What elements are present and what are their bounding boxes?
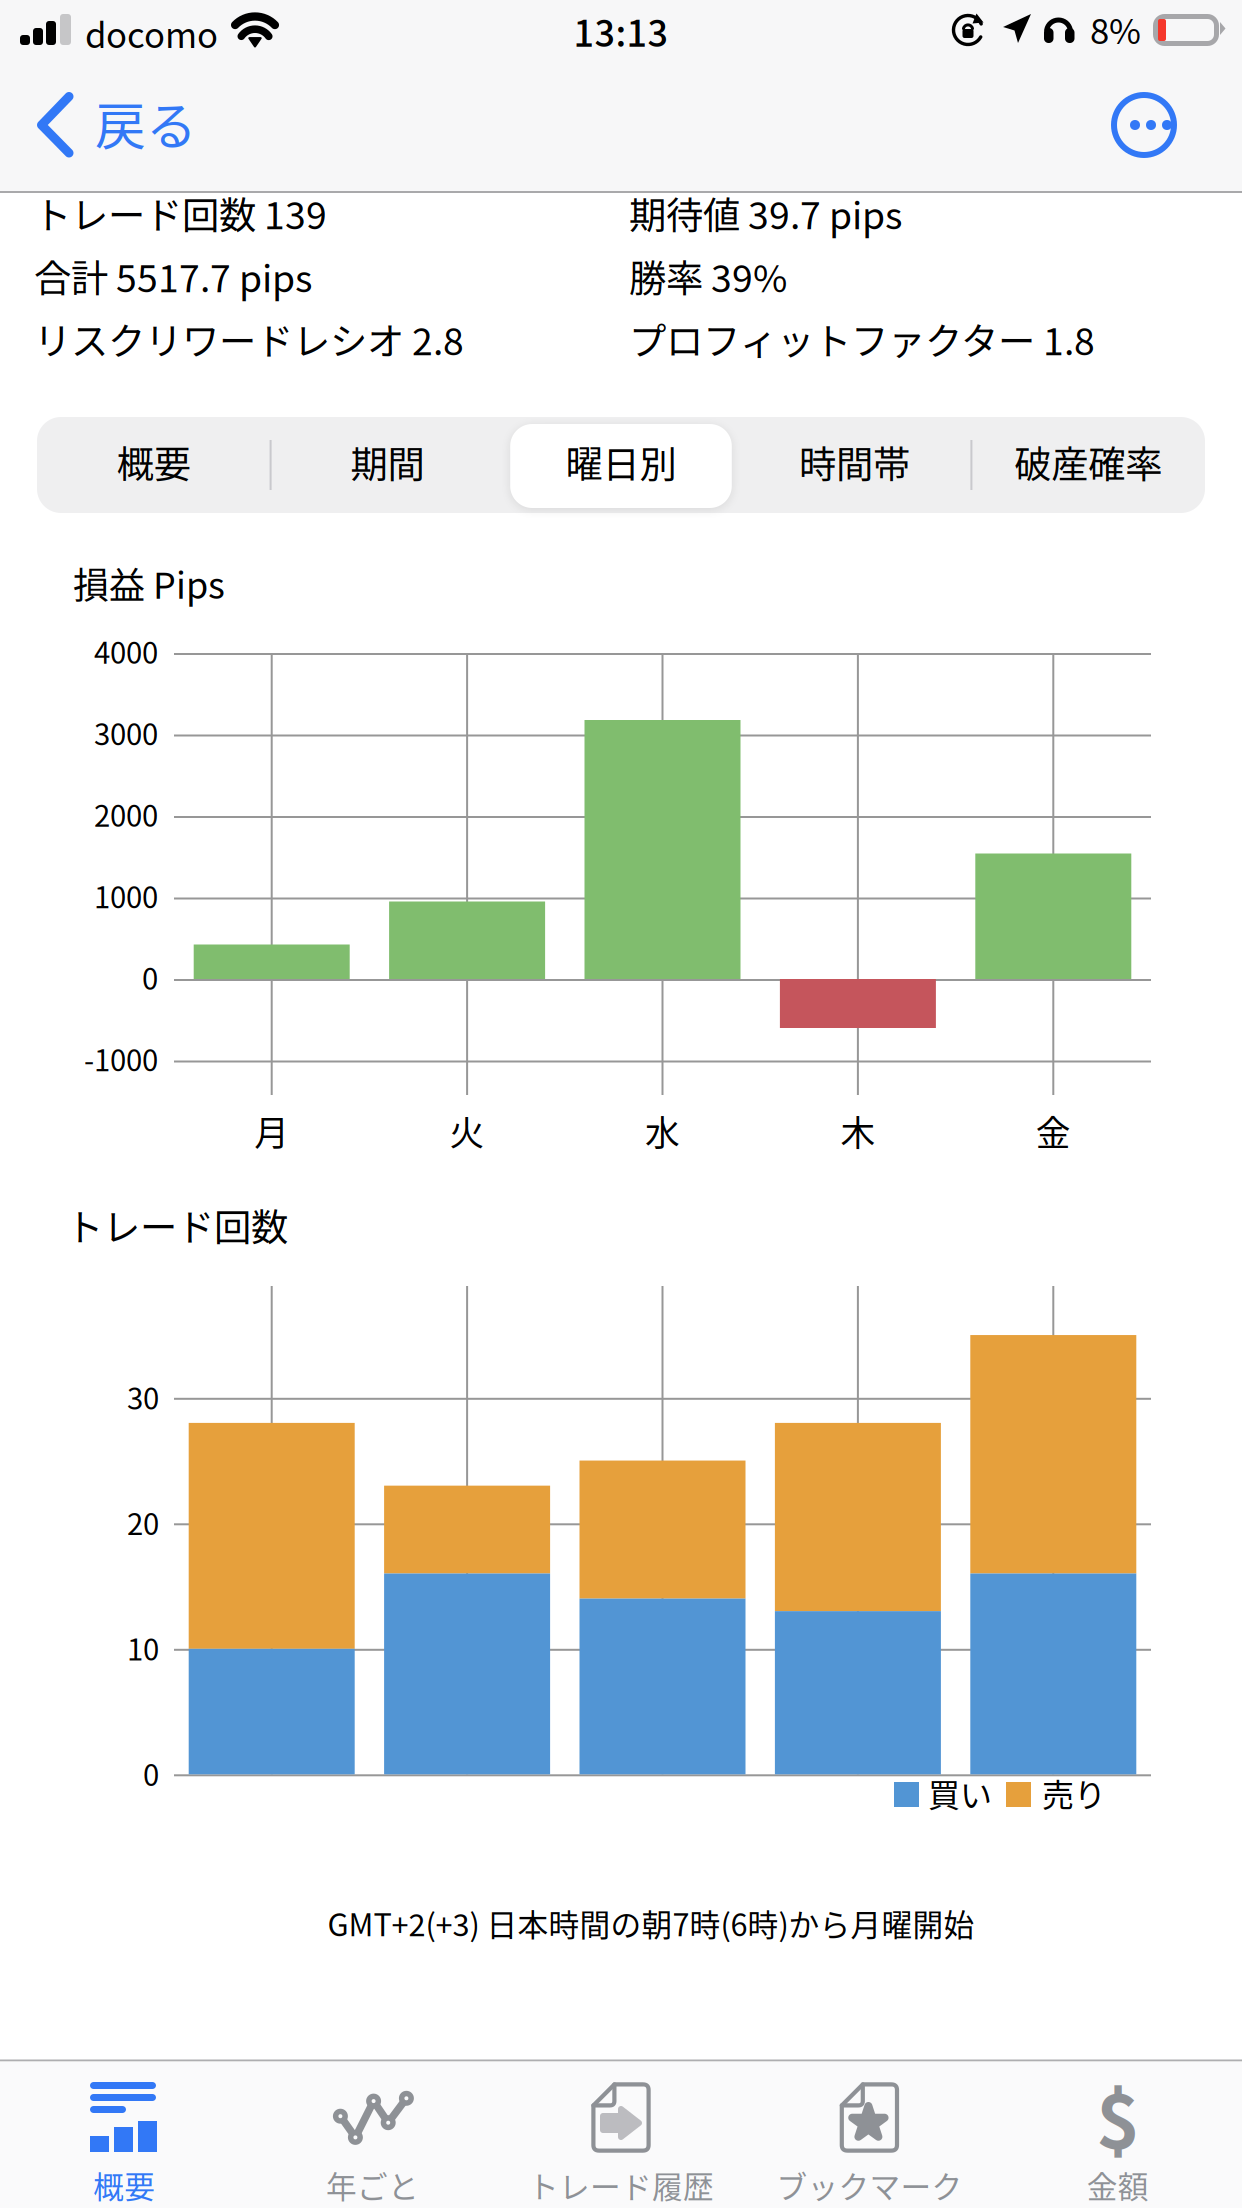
staticText: 0 xyxy=(143,1752,159,1795)
staticText: 1000 xyxy=(94,874,158,917)
staticText: GMT+2(+3) 日本時間の朝7時(6時)から月曜開始 xyxy=(327,1901,974,1945)
staticText: 買い xyxy=(928,1770,992,1816)
button[interactable]: 概要 xyxy=(37,417,271,513)
button[interactable]: 年ごと xyxy=(248,2060,497,2208)
staticText: 年ごと xyxy=(326,2163,419,2207)
button[interactable]: 破産確率 xyxy=(971,417,1205,513)
button[interactable]: 金額 xyxy=(994,2060,1242,2208)
staticText: 30 xyxy=(127,1376,159,1418)
button[interactable]: ブックマーク xyxy=(745,2060,994,2208)
button[interactable]: 時間帯 xyxy=(738,417,971,513)
staticText: 20 xyxy=(127,1501,159,1544)
staticText: 月 xyxy=(254,1106,289,1156)
staticText: 曜日別 xyxy=(565,435,676,489)
staticText: 13:13 xyxy=(573,5,668,57)
button[interactable]: 曜日別 xyxy=(504,417,738,513)
button[interactable]: 戻る xyxy=(36,84,226,180)
staticText: トレード回数 139 xyxy=(34,186,327,240)
staticText: 期間 xyxy=(350,435,424,489)
staticText: 10 xyxy=(127,1627,159,1669)
staticText: 合計 5517.7 pips xyxy=(34,249,312,303)
button[interactable]: 期間 xyxy=(271,417,504,513)
staticText: トレード回数 xyxy=(66,1198,288,1252)
staticText: docomo xyxy=(85,8,218,58)
staticText: 0 xyxy=(142,956,158,998)
staticText: 概要 xyxy=(117,435,191,489)
button[interactable]: 概要 xyxy=(0,2060,248,2208)
staticText: 売り xyxy=(1042,1770,1106,1816)
staticText: 破産確率 xyxy=(1014,435,1162,489)
staticText: 金額 xyxy=(1087,2163,1149,2207)
staticText: 4000 xyxy=(94,630,158,672)
staticText: 概要 xyxy=(93,2163,155,2207)
staticText: $ xyxy=(1096,2062,1140,2170)
staticText: 水 xyxy=(645,1106,680,1156)
button[interactable]: その他 xyxy=(1108,89,1180,161)
staticText: ブックマーク xyxy=(776,2163,962,2207)
staticText: 火 xyxy=(450,1106,485,1156)
staticText: プロフィットファクター 1.8 xyxy=(629,312,1095,366)
staticText: 木 xyxy=(840,1106,875,1156)
staticText: トレード履歴 xyxy=(528,2163,714,2207)
staticText: 勝率 39% xyxy=(629,249,787,303)
button[interactable]: トレード履歴 xyxy=(497,2060,745,2208)
staticText: -1000 xyxy=(84,1037,158,1080)
staticText: 損益 Pips xyxy=(73,557,225,609)
staticText: 2000 xyxy=(94,793,158,835)
staticText: 3000 xyxy=(94,711,158,754)
staticText: 時間帯 xyxy=(799,435,910,489)
staticText: 期待値 39.7 pips xyxy=(629,186,902,240)
staticText: 8% xyxy=(1090,4,1141,54)
staticText: リスクリワードレシオ 2.8 xyxy=(34,312,464,366)
staticText: 戻る xyxy=(95,86,197,160)
staticText: 金 xyxy=(1036,1106,1071,1156)
